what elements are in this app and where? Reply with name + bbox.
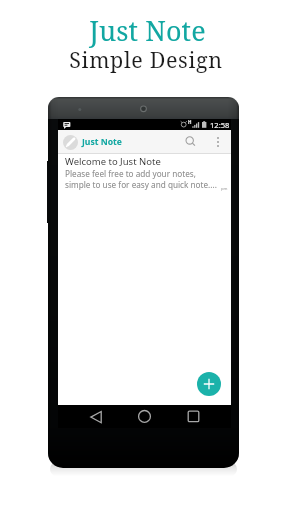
button[interactable]: Back [86, 405, 106, 428]
button[interactable]: Home [134, 405, 154, 428]
button[interactable]: Just Note logo [63, 135, 78, 150]
button[interactable]: Welcome to Just Note [58, 154, 231, 194]
staticText: Simple Design [69, 45, 223, 74]
button[interactable]: Search [181, 130, 201, 153]
staticText: simple to use for easy and quick note...… [65, 179, 217, 190]
staticText: Welcome to Just Note [65, 155, 161, 168]
staticText: 12:58 [210, 120, 230, 130]
staticText: Just Note [89, 12, 206, 49]
staticText: H [188, 119, 192, 125]
button[interactable]: Recent apps [183, 405, 203, 428]
button[interactable]: More options [210, 130, 226, 153]
staticText: pm [221, 186, 228, 192]
staticText: Please feel free to add your notes, [65, 168, 196, 179]
button[interactable]: Add note [197, 372, 221, 396]
staticText: Just Note [82, 136, 122, 148]
